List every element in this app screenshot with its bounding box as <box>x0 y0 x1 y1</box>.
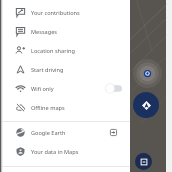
button[interactable]: Map layers <box>135 153 152 170</box>
staticText: Your data in Maps <box>31 148 79 156</box>
button[interactable]: Messages <box>0 22 130 41</box>
button[interactable]: Offline maps <box>0 98 130 117</box>
staticText: Google Earth <box>31 129 66 137</box>
button[interactable]: Start navigation <box>133 92 159 118</box>
staticText: Offline maps <box>31 104 65 112</box>
button[interactable]: Your contributions <box>0 3 130 22</box>
button[interactable]: Wifi only <box>0 79 130 98</box>
button[interactable]: Start driving <box>0 60 130 79</box>
staticText: Messages <box>31 28 57 36</box>
button[interactable]: Your data in Maps <box>0 142 130 161</box>
button[interactable]: Google Earth <box>0 123 130 142</box>
button[interactable]: Location sharing <box>0 41 130 60</box>
staticText: Start driving <box>31 66 64 74</box>
staticText: Your contributions <box>31 9 80 17</box>
staticText: Wifi only <box>31 85 54 93</box>
staticText: Location sharing <box>31 47 75 55</box>
